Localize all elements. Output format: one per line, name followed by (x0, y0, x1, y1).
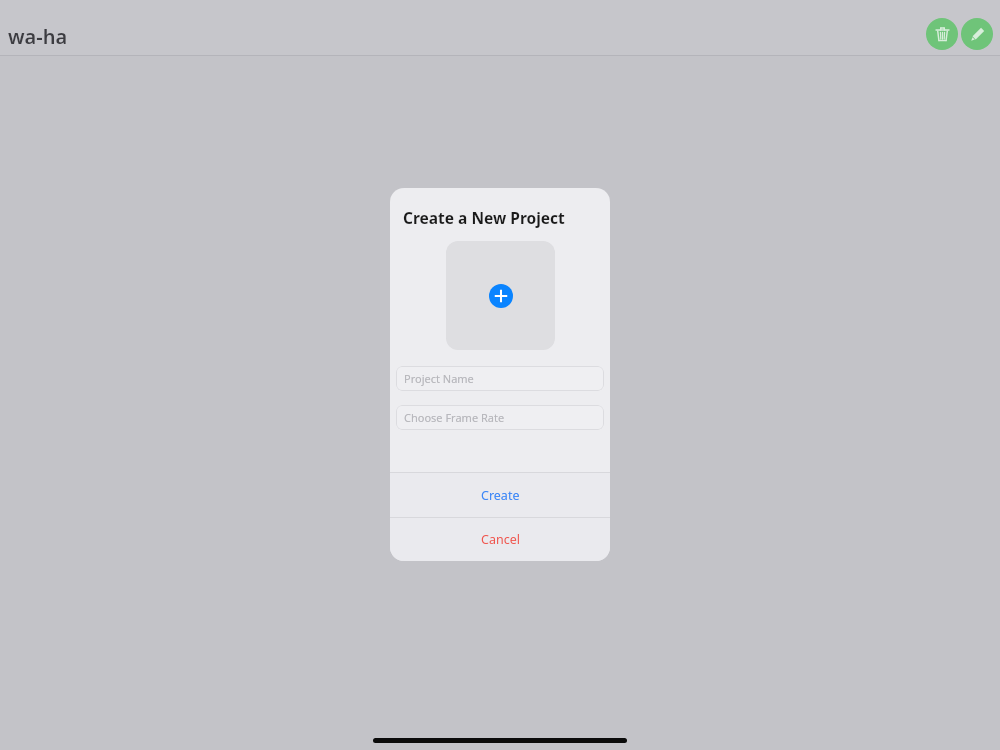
staticText: Project Name (404, 371, 474, 386)
button[interactable]: Choose Frame Rate (396, 405, 604, 430)
staticText: Cancel (481, 531, 520, 548)
button[interactable]: Cancel (390, 518, 610, 561)
button[interactable]: Delete (926, 18, 958, 50)
staticText: wa-ha (8, 23, 68, 50)
staticText: Create a New Project (403, 207, 565, 228)
button[interactable]: Project Name (396, 366, 604, 391)
staticText: Choose Frame Rate (404, 410, 505, 425)
button[interactable]: Create (390, 473, 610, 517)
button[interactable]: Edit (961, 18, 993, 50)
staticText: Create (481, 487, 520, 504)
button[interactable]: Add project image (446, 241, 555, 350)
